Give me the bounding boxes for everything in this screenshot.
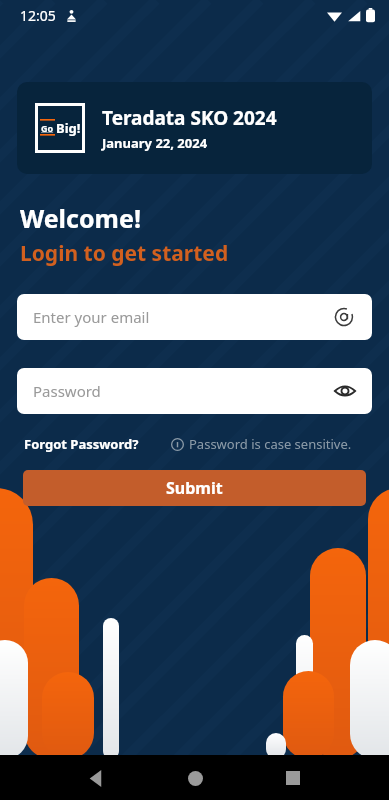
- staticText: Big!: [56, 119, 81, 137]
- staticText: January 22, 2024: [102, 134, 208, 152]
- button[interactable]: Recents: [271, 756, 315, 800]
- button[interactable]: Submit: [23, 470, 366, 506]
- button[interactable]: Password: [17, 368, 372, 414]
- staticText: 12:05: [20, 6, 56, 25]
- button[interactable]: Go: [17, 82, 372, 174]
- button[interactable]: Enter your email: [17, 294, 372, 340]
- staticText: Submit: [166, 477, 223, 499]
- staticText: Teradata SKO 2024: [102, 105, 277, 131]
- staticText: Password is case sensitive.: [189, 435, 352, 453]
- staticText: Login to get started: [20, 239, 229, 268]
- staticText: Enter your email: [33, 307, 150, 327]
- button[interactable]: Back: [74, 756, 118, 800]
- button[interactable]: Show password: [332, 378, 358, 404]
- staticText: Go: [41, 122, 54, 134]
- staticText: Password: [33, 381, 101, 401]
- staticText: Forgot Password?: [24, 435, 139, 453]
- staticText: Welcome!: [20, 201, 141, 235]
- button[interactable]: Forgot Password?: [24, 435, 139, 453]
- button[interactable]: Home: [173, 756, 217, 800]
